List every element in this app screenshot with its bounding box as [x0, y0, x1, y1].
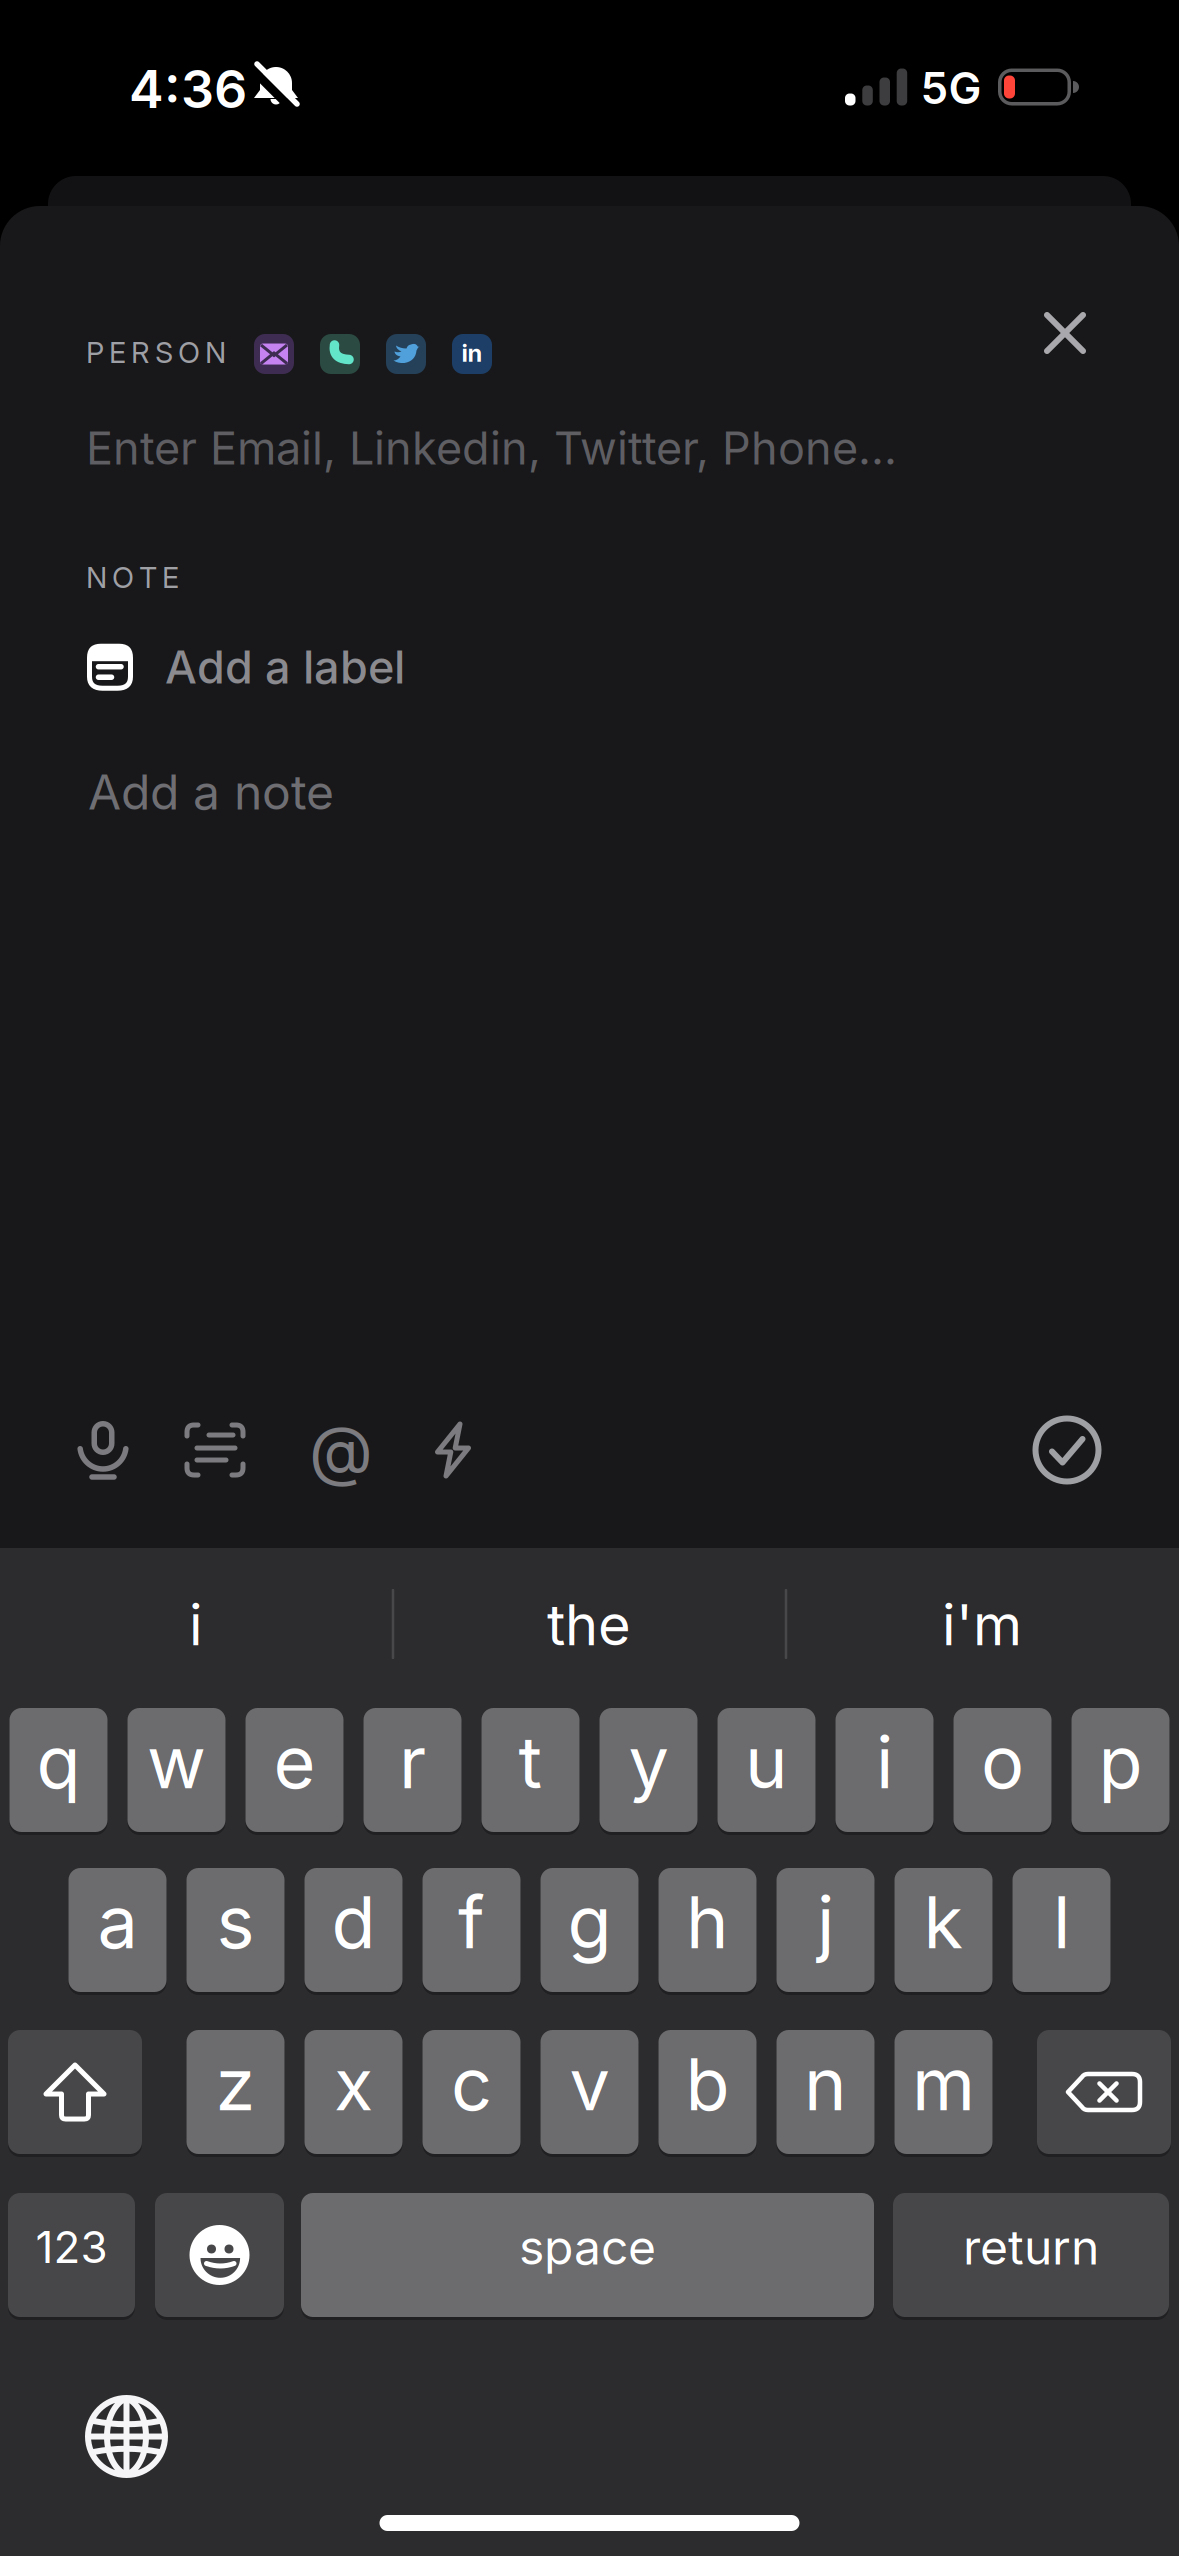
- staticText: i: [876, 1718, 893, 1805]
- button[interactable]: a: [68, 1866, 166, 1994]
- staticText: @: [309, 1410, 373, 1490]
- button[interactable]: t: [481, 1706, 579, 1834]
- button[interactable]: y: [599, 1706, 697, 1834]
- button[interactable]: the: [419, 1575, 759, 1675]
- staticText: return: [963, 2218, 1099, 2276]
- button[interactable]: f: [422, 1866, 520, 1994]
- button[interactable]: p: [1071, 1706, 1169, 1834]
- button[interactable]: g: [540, 1866, 638, 1994]
- button[interactable]: Emoji: [155, 2191, 284, 2319]
- staticText: 123: [35, 2220, 107, 2274]
- staticText: 4:36: [129, 57, 247, 120]
- staticText: j: [817, 1878, 834, 1965]
- button[interactable]: o: [953, 1706, 1051, 1834]
- staticText: l: [1053, 1878, 1070, 1965]
- button[interactable]: c: [422, 2028, 520, 2156]
- button[interactable]: Twitter: [386, 334, 426, 374]
- button[interactable]: b: [658, 2028, 756, 2156]
- staticText: space: [519, 2218, 656, 2276]
- staticText: v: [569, 2040, 609, 2127]
- staticText: z: [215, 2040, 255, 2127]
- button[interactable]: d: [304, 1866, 402, 1994]
- button[interactable]: r: [363, 1706, 461, 1834]
- staticText: k: [923, 1878, 963, 1965]
- button[interactable]: Dictate: [78, 1421, 128, 1479]
- button[interactable]: Scan text: [184, 1422, 246, 1478]
- button[interactable]: Phone: [320, 334, 360, 374]
- staticText: N O T E: [86, 560, 179, 595]
- button[interactable]: Quick action: [434, 1421, 471, 1479]
- button[interactable]: Email: [254, 334, 294, 374]
- button[interactable]: Delete: [1037, 2028, 1171, 2156]
- staticText: Add a label: [165, 640, 405, 694]
- button[interactable]: v: [540, 2028, 638, 2156]
- button[interactable]: i'm: [812, 1575, 1152, 1675]
- button[interactable]: s: [186, 1866, 284, 1994]
- button[interactable]: Add a label: [87, 640, 405, 694]
- staticText: b: [685, 2040, 729, 2127]
- staticText: e: [273, 1718, 315, 1805]
- button[interactable]: Close: [1045, 313, 1085, 353]
- staticText: Add a note: [88, 763, 334, 821]
- button[interactable]: l: [1012, 1866, 1110, 1994]
- button[interactable]: Done: [1032, 1415, 1104, 1487]
- staticText: the: [547, 1591, 631, 1659]
- button[interactable]: Next keyboard: [85, 2395, 167, 2477]
- button[interactable]: e: [245, 1706, 343, 1834]
- staticText: s: [216, 1878, 254, 1965]
- staticText: c: [451, 2040, 492, 2127]
- button[interactable]: q: [9, 1706, 107, 1834]
- button[interactable]: u: [717, 1706, 815, 1834]
- staticText: d: [331, 1878, 375, 1965]
- staticText: q: [36, 1718, 80, 1805]
- staticText: f: [458, 1878, 485, 1965]
- staticText: i'm: [942, 1591, 1022, 1659]
- staticText: a: [97, 1878, 137, 1965]
- staticText: p: [1098, 1718, 1142, 1805]
- staticText: t: [518, 1718, 542, 1805]
- button[interactable]: x: [304, 2028, 402, 2156]
- button[interactable]: w: [127, 1706, 225, 1834]
- button[interactable]: LinkedIn: [452, 334, 492, 374]
- button[interactable]: k: [894, 1866, 992, 1994]
- button[interactable]: j: [776, 1866, 874, 1994]
- button[interactable]: return: [893, 2191, 1169, 2319]
- staticText: y: [628, 1718, 668, 1805]
- staticText: x: [334, 2040, 373, 2127]
- staticText: g: [567, 1878, 611, 1965]
- staticText: 5G: [920, 61, 981, 115]
- button[interactable]: Shift: [8, 2028, 142, 2156]
- staticText: n: [804, 2040, 847, 2127]
- staticText: P E R S O N: [86, 335, 226, 370]
- staticText: in: [461, 338, 482, 367]
- button[interactable]: 123: [8, 2191, 135, 2319]
- staticText: i: [189, 1591, 203, 1659]
- button[interactable]: space: [301, 2191, 874, 2319]
- button[interactable]: z: [186, 2028, 284, 2156]
- staticText: m: [912, 2040, 975, 2127]
- staticText: o: [981, 1718, 1024, 1805]
- staticText: r: [399, 1718, 426, 1805]
- button[interactable]: m: [894, 2028, 992, 2156]
- staticText: h: [686, 1878, 729, 1965]
- button[interactable]: i: [835, 1706, 933, 1834]
- staticText: u: [745, 1718, 788, 1805]
- staticText: Enter Email, Linkedin, Twitter, Phone...: [86, 421, 897, 475]
- button[interactable]: n: [776, 2028, 874, 2156]
- button[interactable]: Mention: [313, 1422, 369, 1478]
- staticText: w: [147, 1718, 206, 1805]
- button[interactable]: i: [26, 1575, 366, 1675]
- button[interactable]: h: [658, 1866, 756, 1994]
